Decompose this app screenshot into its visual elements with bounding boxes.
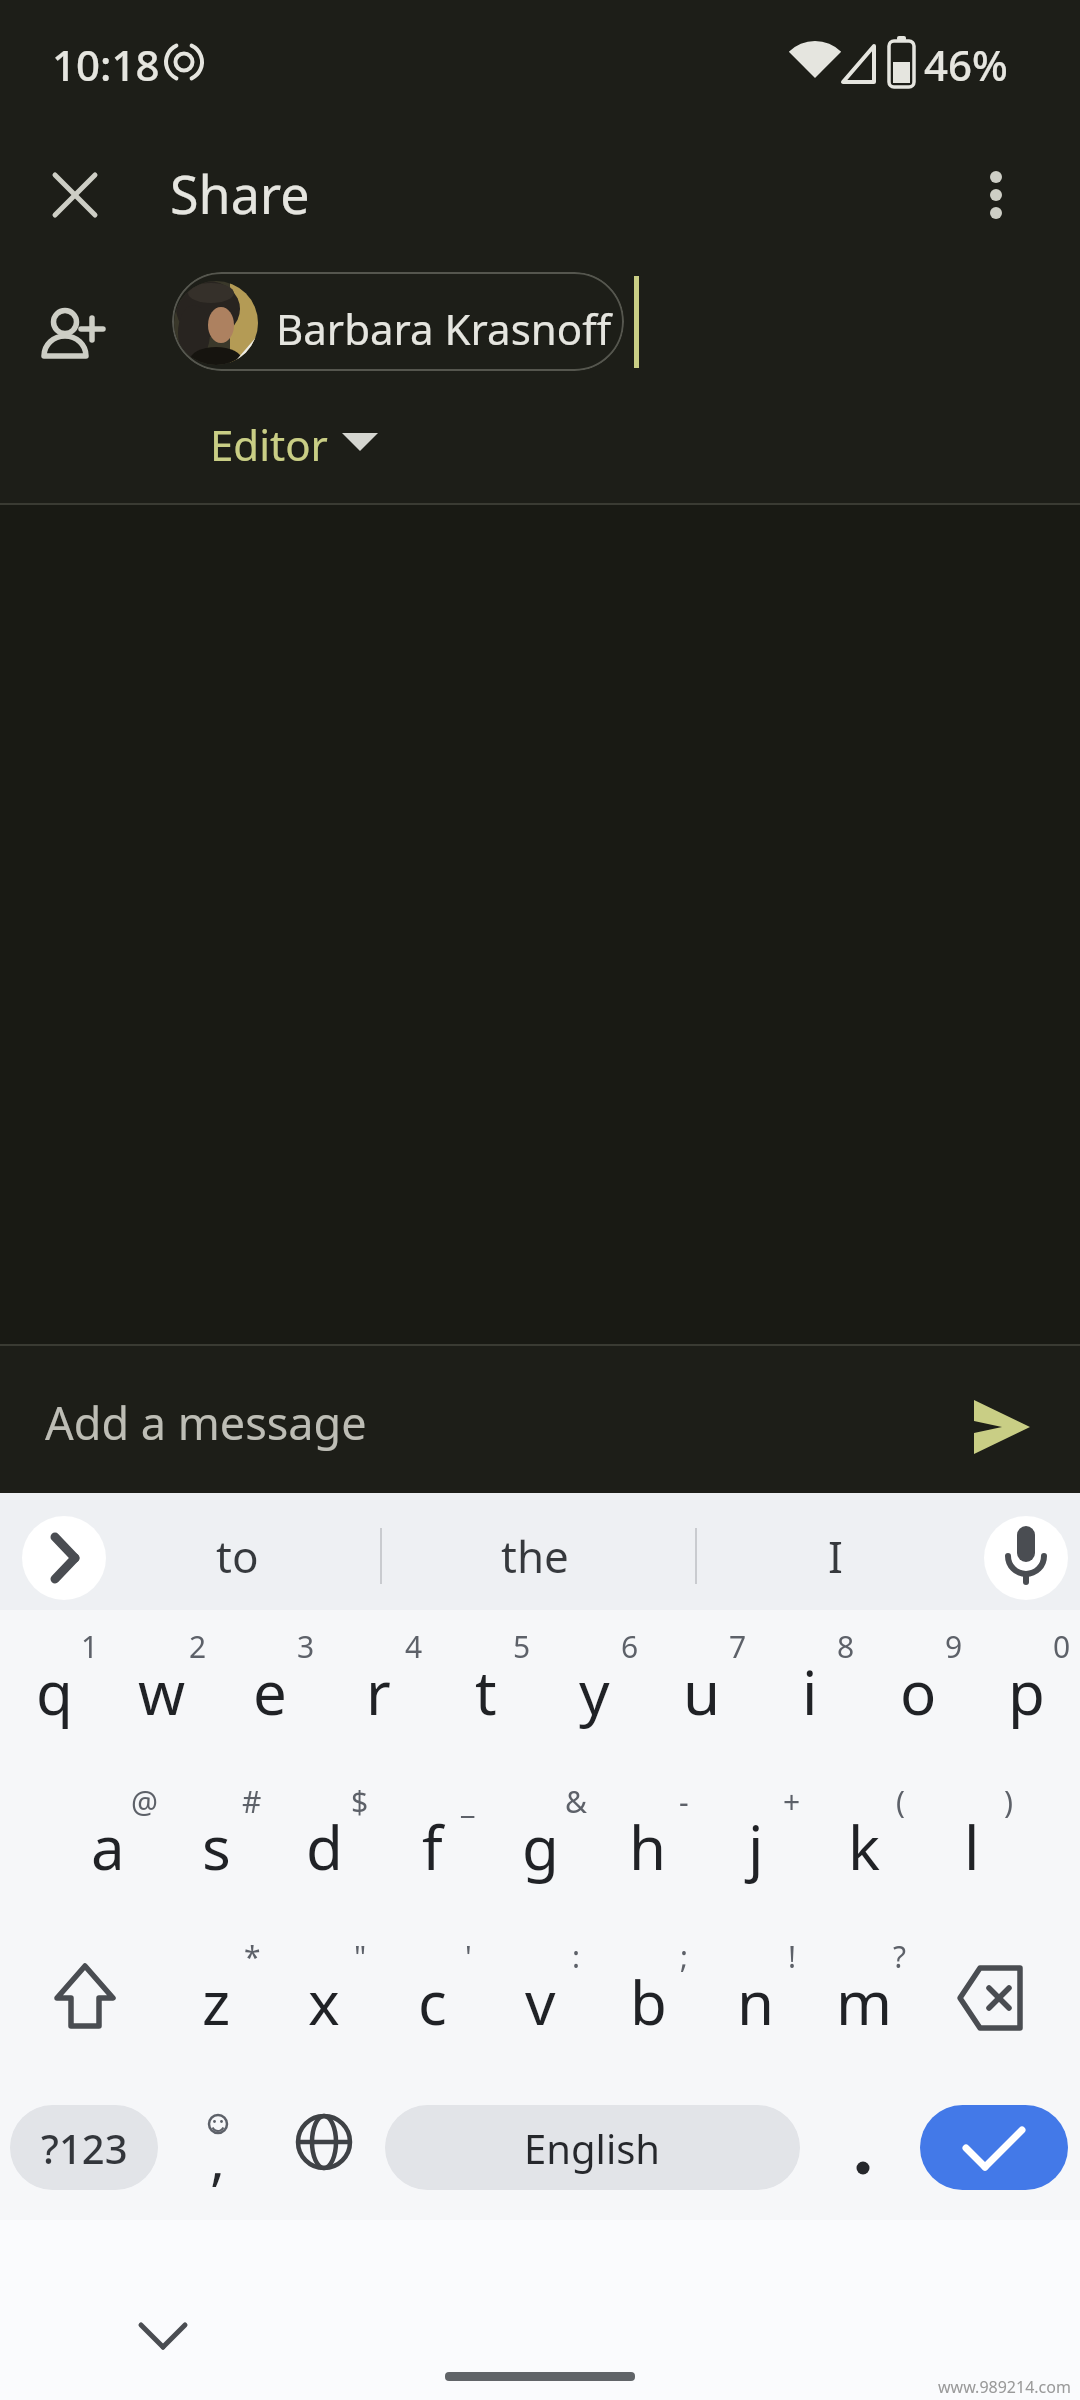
staticText: @ <box>131 1781 158 1822</box>
staticText: ; <box>680 1936 689 1977</box>
button[interactable] <box>48 168 102 222</box>
staticText: f <box>422 1806 443 1888</box>
staticText: ?123 <box>41 2121 128 2175</box>
staticText: t <box>475 1651 497 1733</box>
button[interactable]: 3 <box>216 1612 324 1767</box>
staticText: & <box>565 1781 587 1822</box>
button[interactable]: 8 <box>756 1612 864 1767</box>
button[interactable]: @ <box>54 1767 162 1922</box>
staticText: the <box>501 1526 569 1586</box>
staticText: ? <box>893 1936 907 1977</box>
staticText: d <box>306 1806 343 1888</box>
button[interactable]: 2 <box>108 1612 216 1767</box>
button[interactable]: 9 <box>864 1612 972 1767</box>
button[interactable]: ) <box>918 1767 1026 1922</box>
staticText: , <box>210 2120 226 2196</box>
button[interactable]: # <box>162 1767 270 1922</box>
staticText: 4 <box>405 1626 423 1667</box>
staticText: a <box>91 1806 125 1888</box>
staticText: j <box>748 1806 764 1888</box>
staticText: b <box>630 1961 667 2043</box>
button[interactable]: & <box>486 1767 594 1922</box>
button[interactable]: - <box>594 1767 702 1922</box>
button[interactable]: Editor <box>190 412 400 478</box>
staticText: z <box>202 1961 231 2043</box>
staticText: s <box>202 1806 231 1888</box>
staticText: $ <box>351 1781 369 1822</box>
button[interactable]: to <box>127 1506 347 1606</box>
staticText: Barbara Krasnoff <box>276 300 612 357</box>
staticText: Share <box>170 158 310 229</box>
button[interactable] <box>120 2295 210 2385</box>
staticText: w <box>138 1651 186 1733</box>
button[interactable] <box>926 1922 1066 2077</box>
staticText: y <box>579 1651 610 1733</box>
staticText: e <box>253 1651 287 1733</box>
staticText: 10:18 <box>52 36 160 93</box>
button[interactable] <box>44 300 106 364</box>
button[interactable]: 0 <box>972 1612 1080 1767</box>
staticText: 2 <box>189 1626 207 1667</box>
button[interactable]: ! <box>702 1922 810 2077</box>
button[interactable] <box>830 2105 896 2190</box>
button[interactable] <box>974 166 1018 224</box>
staticText: ' <box>465 1936 472 1977</box>
staticText: 7 <box>729 1626 747 1667</box>
button[interactable]: ? <box>810 1922 918 2077</box>
button[interactable]: 1 <box>0 1612 108 1767</box>
button[interactable]: I <box>735 1506 935 1606</box>
staticText: # <box>242 1781 262 1822</box>
button[interactable]: + <box>702 1767 810 1922</box>
button[interactable]: 5 <box>432 1612 540 1767</box>
button[interactable]: 7 <box>648 1612 756 1767</box>
staticText: q <box>36 1651 73 1733</box>
button[interactable]: 6 <box>540 1612 648 1767</box>
button[interactable]: Barbara Krasnoff <box>172 272 624 371</box>
button[interactable] <box>920 2105 1068 2190</box>
staticText: 0 <box>1053 1626 1071 1667</box>
button[interactable]: English <box>385 2105 800 2190</box>
button[interactable]: ?123 <box>10 2105 158 2190</box>
button[interactable] <box>972 1398 1034 1456</box>
staticText: www.989214.com <box>938 2376 1071 2398</box>
staticText: r <box>366 1651 391 1733</box>
staticText: I <box>828 1526 843 1586</box>
button[interactable] <box>22 1516 106 1600</box>
staticText: 5 <box>513 1626 531 1667</box>
button[interactable] <box>984 1516 1068 1600</box>
staticText: o <box>900 1651 937 1733</box>
button[interactable] <box>168 2105 268 2190</box>
staticText: i <box>802 1651 818 1733</box>
button[interactable]: : <box>486 1922 594 2077</box>
staticText: : <box>572 1936 581 1977</box>
staticText: g <box>522 1806 559 1888</box>
staticText: Editor <box>210 416 328 473</box>
staticText: " <box>354 1936 367 1977</box>
staticText: _ <box>461 1781 475 1822</box>
staticText: * <box>244 1936 261 1977</box>
staticText: to <box>216 1526 259 1586</box>
staticText: 1 <box>81 1626 99 1667</box>
button[interactable]: $ <box>270 1767 378 1922</box>
button[interactable]: _ <box>378 1767 486 1922</box>
staticText: ) <box>1004 1781 1013 1822</box>
staticText: p <box>1008 1651 1045 1733</box>
button[interactable] <box>278 2105 373 2190</box>
staticText: k <box>848 1806 881 1888</box>
button[interactable]: ( <box>810 1767 918 1922</box>
staticText: 8 <box>837 1626 855 1667</box>
button[interactable]: ' <box>378 1922 486 2077</box>
button[interactable]: * <box>162 1922 270 2077</box>
staticText: 3 <box>297 1626 315 1667</box>
button[interactable]: Add a message <box>0 1346 1080 1493</box>
button[interactable]: ; <box>594 1922 702 2077</box>
button[interactable] <box>14 1922 154 2077</box>
staticText: 6 <box>621 1626 639 1667</box>
staticText: - <box>679 1781 689 1822</box>
staticText: ( <box>896 1781 905 1822</box>
staticText: l <box>964 1806 980 1888</box>
button[interactable]: the <box>415 1506 655 1606</box>
staticText: English <box>524 2121 661 2175</box>
button[interactable]: " <box>270 1922 378 2077</box>
button[interactable]: 4 <box>324 1612 432 1767</box>
